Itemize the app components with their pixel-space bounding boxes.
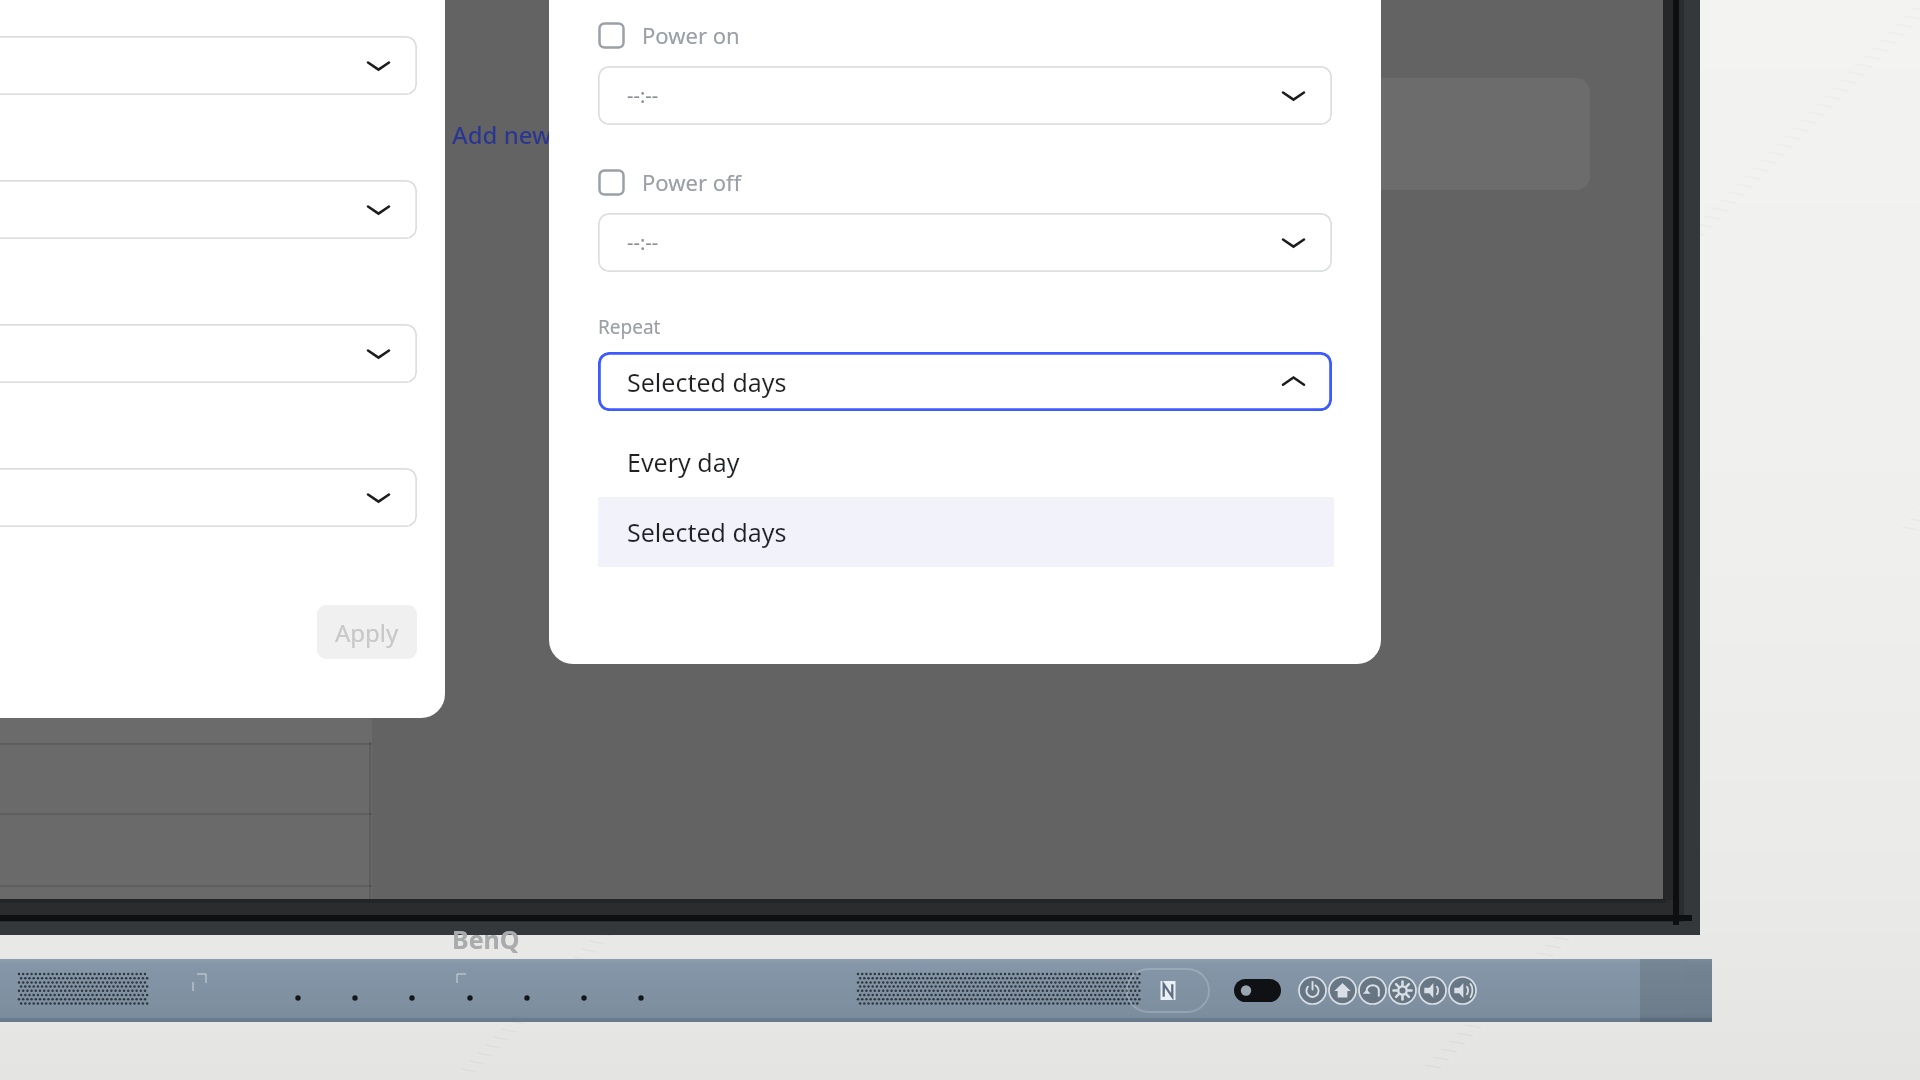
button[interactable]: Key lock switch <box>1234 979 1281 1002</box>
other: Expand <box>367 54 390 77</box>
other: Expand <box>1282 84 1305 107</box>
button[interactable]: Expand <box>0 36 417 95</box>
button[interactable]: Volume up <box>1448 976 1477 1005</box>
button[interactable]: Apply <box>317 605 417 659</box>
staticText: Every day <box>627 445 740 479</box>
button[interactable]: Add new <box>452 113 572 155</box>
button[interactable]: --:-- <box>598 66 1332 125</box>
staticText: Apply <box>335 616 399 649</box>
staticText: Repeat <box>598 314 661 340</box>
button[interactable]: Selected days <box>598 497 1334 567</box>
staticText: Power off <box>642 167 742 197</box>
button[interactable]: Power on <box>598 14 740 56</box>
staticText: Power on <box>642 20 740 50</box>
button[interactable]: Back <box>1358 976 1387 1005</box>
button[interactable]: Expand <box>0 324 417 383</box>
other: Expand <box>367 486 390 509</box>
button[interactable]: Selected days <box>598 352 1332 411</box>
other: Expand <box>1282 231 1305 254</box>
button[interactable]: Every day <box>598 427 1334 497</box>
staticText: --:-- <box>627 229 659 256</box>
other: Expand <box>367 342 390 365</box>
button[interactable]: Settings <box>1388 976 1417 1005</box>
button[interactable]: Expand <box>0 468 417 527</box>
button[interactable]: Volume down <box>1418 976 1447 1005</box>
button[interactable]: Home <box>1328 976 1357 1005</box>
staticText: Add new <box>452 118 552 151</box>
staticText: Selected days <box>627 515 787 549</box>
staticText: Selected days <box>627 365 787 399</box>
staticText: --:-- <box>627 82 659 109</box>
button[interactable]: Power off <box>598 161 742 203</box>
button[interactable]: --:-- <box>598 213 1332 272</box>
button[interactable]: NFC <box>1126 968 1210 1013</box>
button[interactable]: Expand <box>0 180 417 239</box>
staticText: BenQ <box>452 922 520 956</box>
button[interactable]: Power <box>1298 976 1327 1005</box>
other: Expand <box>367 198 390 221</box>
other: Collapse <box>1282 370 1305 393</box>
